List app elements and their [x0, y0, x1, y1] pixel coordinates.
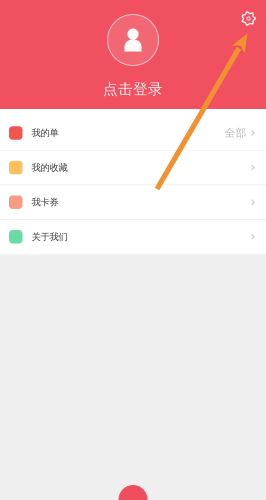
staticText: 点击登录 [103, 80, 163, 98]
button[interactable]: 我的单 [0, 116, 266, 150]
staticText: 全部 [225, 126, 247, 139]
staticText: 我的单 [31, 127, 58, 139]
button[interactable]: Settings [234, 4, 263, 33]
staticText: 关于我们 [31, 231, 67, 243]
staticText: 我卡券 [31, 196, 58, 208]
button[interactable]: 我卡券 [0, 185, 266, 219]
button[interactable]: 关于我们 [0, 220, 266, 254]
button[interactable]: 我的收藏 [0, 151, 266, 185]
staticText: 我的收藏 [31, 162, 67, 173]
